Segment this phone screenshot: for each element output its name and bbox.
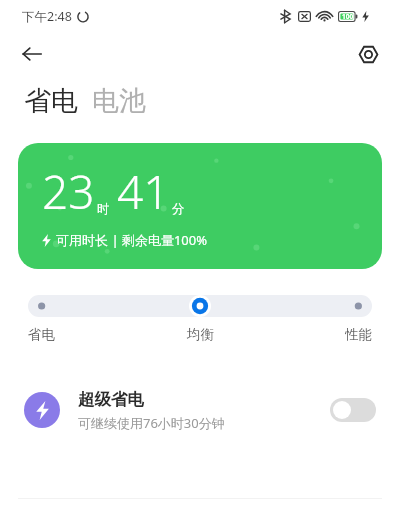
button[interactable]: 超级省电 xyxy=(0,377,400,443)
staticText: 均衡 xyxy=(187,326,214,343)
button[interactable]: 均衡 xyxy=(187,326,214,343)
button[interactable]: 性能 xyxy=(345,326,372,343)
button[interactable]: Back xyxy=(12,34,52,74)
staticText: 下午2:48 xyxy=(22,8,72,25)
staticText: 性能 xyxy=(345,326,372,343)
staticText: 41 xyxy=(117,160,170,223)
button[interactable]: 省电 xyxy=(28,326,55,343)
button[interactable]: 省电 xyxy=(24,84,78,118)
staticText: 时 xyxy=(97,201,110,217)
button[interactable]: 超级省电 toggle xyxy=(330,398,376,422)
staticText: 省电 xyxy=(28,326,55,343)
staticText: 可继续使用76小时30分钟 xyxy=(78,414,225,432)
staticText: 100 xyxy=(342,12,354,21)
staticText: 分 xyxy=(172,201,185,217)
staticText: 超级省电 xyxy=(78,389,144,410)
staticText: 电池 xyxy=(92,84,146,118)
button[interactable]: Settings xyxy=(348,34,388,74)
button[interactable]: 电池 xyxy=(92,84,146,118)
staticText: 23 xyxy=(42,160,95,223)
staticText: 可用时长 | 剩余电量100% xyxy=(56,231,208,249)
button[interactable]: 23 xyxy=(18,143,382,269)
staticText: 省电 xyxy=(24,84,78,118)
button[interactable] xyxy=(28,295,372,317)
